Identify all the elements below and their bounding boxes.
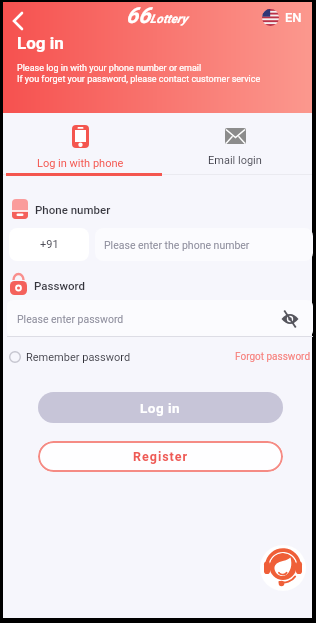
button[interactable]: Log in [38,392,283,423]
button[interactable]: Please enter the phone number [95,228,313,261]
staticText: If you forget your password, please cont… [17,74,261,85]
staticText: 66 [126,3,151,29]
staticText: Log in with phone [37,157,124,170]
staticText: Please log in with your phone number or … [17,63,202,74]
button[interactable]: Register [38,441,283,472]
staticText: +91 [40,238,59,251]
button[interactable] [260,545,306,591]
button[interactable]: +91 [9,228,89,261]
button[interactable]: Forgot password [235,351,311,363]
button[interactable]: Please enter password [7,300,313,337]
button[interactable]: EN [262,9,302,26]
staticText: Register [133,449,189,464]
staticText: Please enter password [17,313,124,325]
button[interactable] [10,10,28,32]
staticText: Log in [140,400,181,416]
staticText: Lottery [150,12,188,26]
button[interactable]: Remember password [26,351,131,364]
button[interactable]: Log in with phone [3,113,158,170]
staticText: Log in [17,33,64,53]
staticText: Password [34,279,85,292]
staticText: Email login [208,154,262,167]
staticText: Please enter the phone number [104,239,250,251]
button[interactable]: Email login [158,113,312,167]
button[interactable] [9,351,21,363]
staticText: Phone number [35,203,111,216]
staticText: EN [285,10,302,25]
